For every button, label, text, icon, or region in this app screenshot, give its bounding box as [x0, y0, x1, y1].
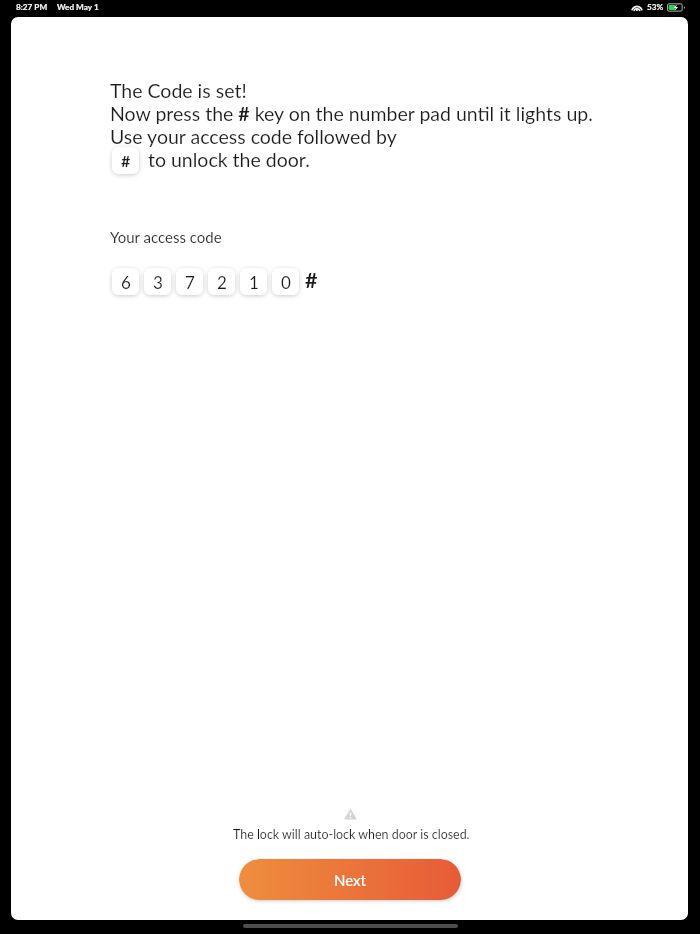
staticText: Next [334, 871, 366, 889]
button[interactable]: 3 [144, 268, 171, 295]
staticText: Use your access code followed by [110, 125, 397, 148]
staticText: 1 [249, 272, 259, 292]
staticText: 53% [647, 2, 664, 12]
button[interactable]: Next [239, 859, 461, 900]
staticText: The lock will auto-lock when door is clo… [233, 827, 470, 842]
button[interactable]: # [112, 147, 139, 174]
staticText: 6 [121, 272, 131, 292]
button[interactable]: 6 [112, 268, 139, 295]
staticText: 3 [153, 272, 163, 292]
staticText: Your access code [110, 228, 222, 246]
staticText: 7 [185, 272, 195, 292]
staticText: 8:27 PM [16, 2, 48, 12]
staticText: 2 [217, 272, 227, 292]
staticText: The Code is set! [110, 79, 247, 102]
staticText: 0 [281, 272, 291, 292]
button[interactable]: 2 [208, 268, 235, 295]
staticText: # [121, 151, 131, 170]
button[interactable]: 0 [272, 268, 299, 295]
button[interactable]: 1 [240, 268, 267, 295]
staticText: Now press the # key on the number pad un… [110, 102, 593, 125]
staticText: Wed May 1 [57, 2, 99, 12]
staticText: # [305, 267, 318, 293]
staticText: to unlock the door. [148, 148, 310, 171]
button[interactable]: 7 [176, 268, 203, 295]
